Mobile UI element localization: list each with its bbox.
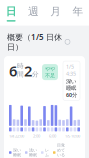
staticText: 分 (32, 70, 39, 78)
staticText: 浅い睡眠 (29, 148, 37, 157)
staticText: 2 (24, 61, 32, 81)
button[interactable]: 月 (44, 3, 67, 24)
button[interactable]: 日 (0, 3, 22, 24)
staticText: 2:00 (33, 133, 40, 139)
staticText: 目覚めている状態 (57, 143, 65, 158)
staticText: 時間 (17, 62, 24, 78)
staticText: 6:00 (49, 133, 56, 139)
staticText: 年 (72, 5, 83, 18)
button[interactable]: 年 (67, 3, 89, 24)
staticText: 週 (28, 5, 39, 18)
staticText: 日 (6, 5, 17, 18)
staticText: 6 (9, 61, 17, 81)
staticText: 深い睡眠 (13, 148, 21, 157)
button[interactable]: 週 (22, 3, 44, 24)
staticText: やや不足 (45, 66, 55, 79)
staticText: 1/5 4:35 (66, 63, 76, 77)
staticText: 月 (50, 5, 61, 18)
staticText: 概要（1/5 日休日） (7, 32, 62, 52)
button[interactable]: 詳細情報 (65, 39, 70, 44)
staticText: 1/5 10:00 (65, 133, 80, 139)
staticText: レム (45, 148, 49, 157)
staticText: 深い睡眠60分 (66, 78, 77, 98)
staticText: 1/4 22:00 (9, 133, 24, 139)
